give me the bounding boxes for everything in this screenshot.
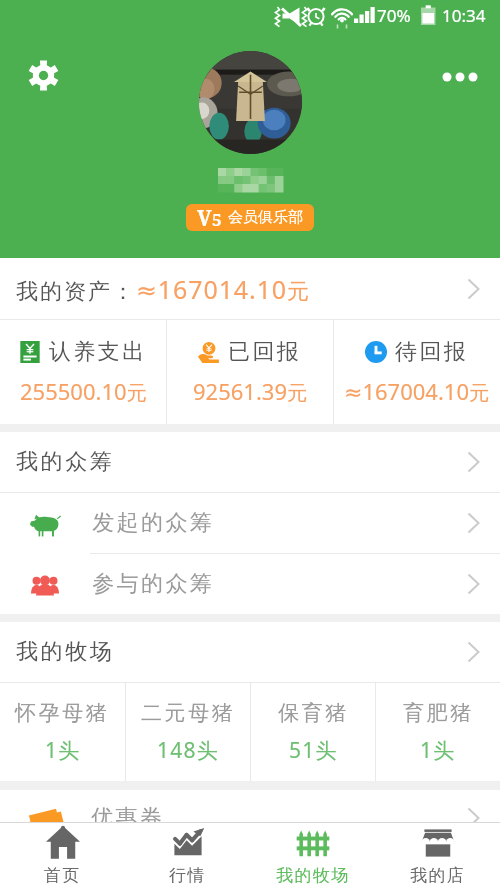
staticText: 行情 (169, 865, 206, 886)
button[interactable]: More options (438, 55, 482, 99)
button[interactable]: 育肥猪 (376, 683, 500, 781)
staticText: 92561.39元 (193, 376, 307, 406)
button[interactable]: 怀孕母猪 (0, 683, 125, 781)
staticText: 会员俱乐部 (228, 208, 303, 227)
staticText: ≈167004.10元 (344, 376, 490, 406)
staticText: V (197, 204, 212, 231)
button[interactable]: 已回报 (167, 320, 333, 424)
button[interactable]: 认养支出 (0, 320, 166, 424)
button[interactable]: 我的牧场 (0, 622, 500, 682)
button[interactable]: Settings (22, 54, 64, 96)
button[interactable]: V (186, 204, 314, 231)
button[interactable]: 我的牧场 (250, 823, 375, 889)
button[interactable]: 保育猪 (251, 683, 375, 781)
button[interactable]: 优惠券 (0, 802, 500, 834)
staticText: 10:34 (442, 4, 486, 27)
staticText: 51头 (289, 736, 338, 765)
button[interactable]: 首页 (0, 823, 125, 889)
staticText: 保育猪 (278, 700, 349, 726)
staticText: 70% (377, 4, 411, 27)
staticText: 怀孕母猪 (15, 700, 110, 726)
button[interactable]: 参与的众筹 (0, 554, 500, 614)
staticText: 1头 (420, 736, 456, 765)
staticText: 我的众筹 (16, 448, 115, 476)
staticText: 参与的众筹 (91, 570, 213, 598)
staticText: 1头 (45, 736, 81, 765)
button[interactable]: 发起的众筹 (0, 493, 500, 553)
staticText: 认养支出 (49, 338, 147, 366)
staticText: 优惠券 (91, 804, 165, 832)
staticText: 发起的众筹 (91, 509, 213, 537)
staticText: 我的店 (410, 865, 466, 886)
staticText: 首页 (44, 865, 81, 886)
button[interactable]: 行情 (125, 823, 250, 889)
button[interactable]: 我的众筹 (0, 432, 500, 492)
staticText: 已回报 (228, 338, 302, 366)
button[interactable]: 待回报 (334, 320, 500, 424)
button[interactable]: 我的资产：≈167014.10元 (0, 258, 500, 319)
staticText: 148头 (157, 736, 219, 765)
staticText: 我的牧场 (16, 638, 115, 666)
button[interactable]: 我的店 (375, 823, 500, 889)
staticText: 我的牧场 (276, 865, 350, 886)
staticText: 待回报 (395, 338, 469, 366)
staticText: 255500.10元 (20, 376, 147, 406)
button[interactable]: 二元母猪 (126, 683, 250, 781)
staticText: 5 (212, 208, 222, 231)
staticText: 育肥猪 (403, 700, 474, 726)
staticText: 我的资产：≈167014.10元 (16, 272, 310, 306)
staticText: 二元母猪 (141, 700, 236, 726)
